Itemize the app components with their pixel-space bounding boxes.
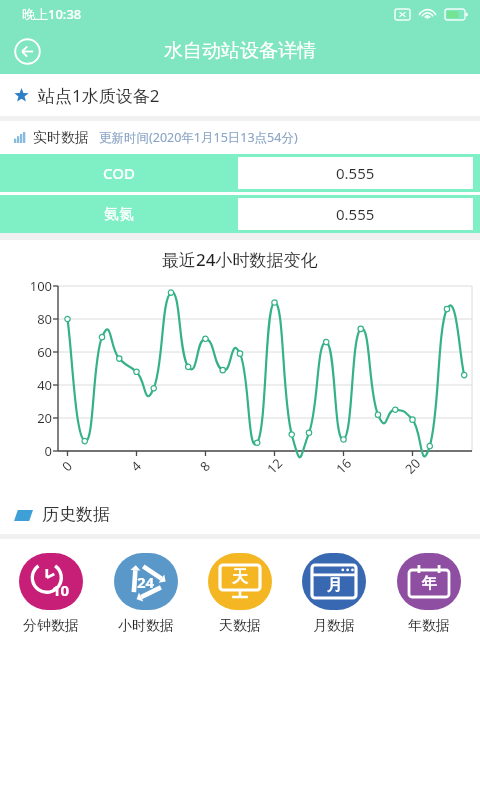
button[interactable]: 氨氮 — [0, 195, 480, 233]
button[interactable]: 月 — [291, 551, 377, 637]
staticText: 小时数据 — [118, 617, 174, 635]
staticText: 10 — [52, 580, 70, 600]
staticText: 20 — [4, 409, 52, 427]
staticText: 月 — [327, 576, 342, 595]
button[interactable]: Back — [8, 32, 46, 70]
button[interactable]: 天 — [197, 551, 283, 637]
staticText: 氨氮 — [104, 205, 134, 224]
staticText: 年数据 — [408, 617, 450, 635]
staticText: 历史数据 — [42, 504, 110, 525]
staticText: 更新时间(2020年1月15日13点54分) — [99, 129, 298, 146]
staticText: 80 — [4, 310, 52, 328]
staticText: 实时数据 — [33, 129, 89, 147]
button[interactable]: COD — [0, 154, 480, 192]
staticText: 20 — [401, 454, 424, 478]
staticText: 分钟数据 — [23, 617, 79, 635]
staticText: 0.555 — [336, 163, 375, 183]
staticText: 100 — [4, 277, 52, 295]
staticText: 年 — [422, 574, 437, 593]
staticText: 40 — [4, 376, 52, 394]
staticText: 天 — [232, 567, 248, 587]
staticText: 24 — [137, 572, 155, 592]
staticText: COD — [103, 163, 135, 183]
staticText: 16 — [332, 454, 355, 478]
button[interactable]: 站点1水质设备2 — [0, 74, 480, 116]
staticText: 0 — [4, 442, 52, 460]
staticText: 最近24小时数据变化 — [162, 248, 318, 271]
staticText: 0.555 — [336, 204, 375, 224]
staticText: 月数据 — [313, 617, 355, 635]
button[interactable]: 10 — [8, 551, 94, 637]
button[interactable]: 年 — [386, 551, 472, 637]
staticText: 8 — [196, 457, 214, 475]
button[interactable]: 24 — [103, 551, 189, 637]
staticText: 水自动站设备详情 — [164, 39, 316, 63]
staticText: 站点1水质设备2 — [38, 84, 160, 107]
staticText: 60 — [4, 343, 52, 361]
staticText: 4 — [127, 457, 145, 475]
staticText: 12 — [263, 454, 286, 478]
staticText: 晚上10:38 — [22, 5, 82, 23]
staticText: 0 — [58, 457, 76, 475]
staticText: 天数据 — [219, 617, 261, 635]
